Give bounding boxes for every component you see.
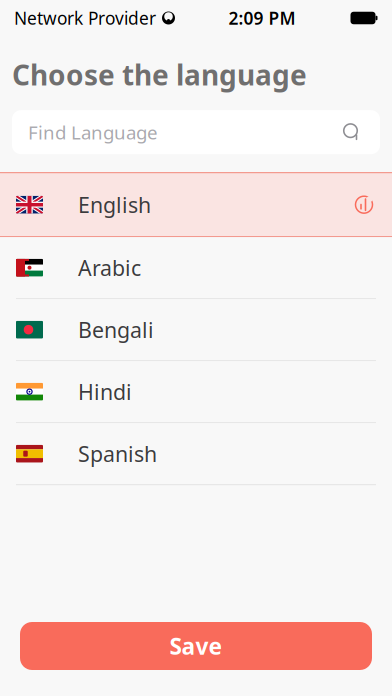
staticText: English <box>78 190 151 219</box>
staticText: Arabic <box>78 253 141 282</box>
staticText: Choose the language <box>12 56 307 93</box>
staticText: 2:09 PM <box>228 6 295 29</box>
staticText: Hindi <box>78 377 132 406</box>
staticText: Bengali <box>78 315 154 344</box>
button[interactable]: Hindi <box>0 361 392 423</box>
button[interactable]: Bengali <box>0 299 392 361</box>
staticText: Find Language <box>28 120 158 145</box>
staticText: Save <box>169 631 222 661</box>
button[interactable]: Save <box>20 622 372 670</box>
button[interactable]: English <box>0 172 392 237</box>
staticText: Spanish <box>78 439 157 468</box>
button[interactable]: Find Language <box>12 110 380 154</box>
button[interactable]: Spanish <box>0 423 392 485</box>
button[interactable]: Arabic <box>0 237 392 299</box>
staticText: Network Provider <box>14 6 156 29</box>
